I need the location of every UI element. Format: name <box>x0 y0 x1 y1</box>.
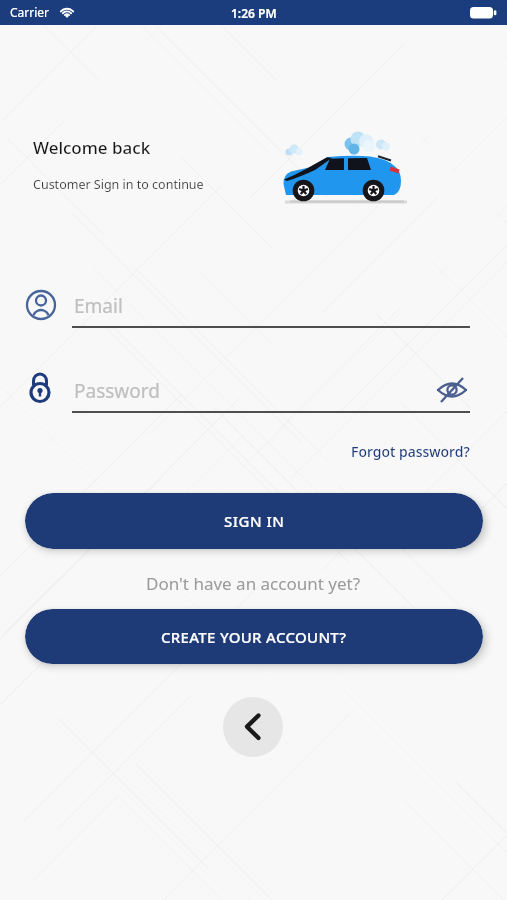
button[interactable] <box>27 283 470 329</box>
staticText: 1:26 PM <box>231 5 277 21</box>
button[interactable] <box>27 368 430 414</box>
staticText: Carrier <box>10 4 50 20</box>
button[interactable] <box>434 372 470 408</box>
staticText: Don't have an account yet? <box>146 572 361 595</box>
staticText: Welcome back <box>33 136 151 159</box>
button[interactable]: SIGN IN <box>25 493 483 549</box>
staticText: Customer Sign in to continue <box>33 176 204 193</box>
staticText: CREATE YOUR ACCOUNT? <box>161 627 347 647</box>
staticText: Password <box>74 378 160 404</box>
staticText: Email <box>74 293 123 319</box>
button[interactable] <box>223 697 283 757</box>
staticText: SIGN IN <box>224 511 285 531</box>
button[interactable]: Forgot password? <box>351 442 470 461</box>
button[interactable]: CREATE YOUR ACCOUNT? <box>25 609 483 664</box>
